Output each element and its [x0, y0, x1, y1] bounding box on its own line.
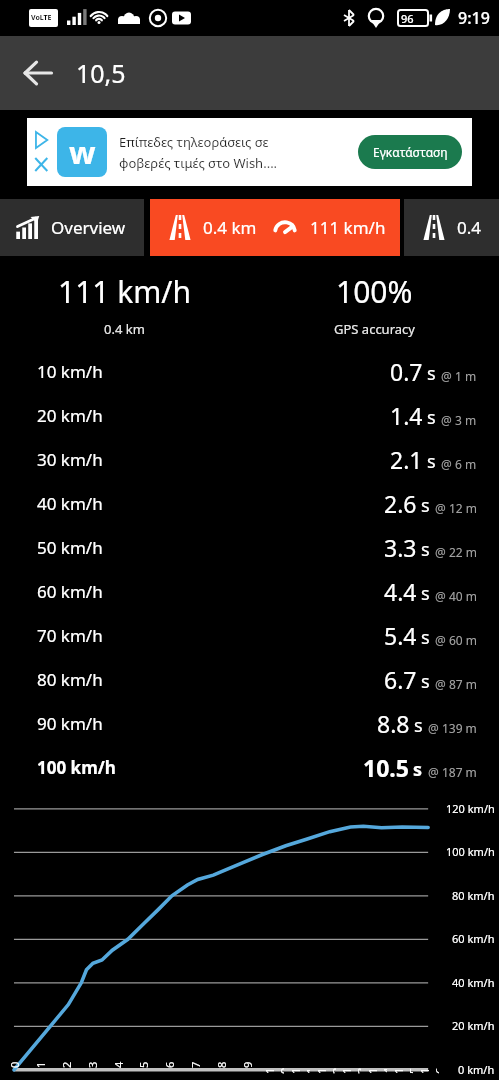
staticText: 10 km/h — [37, 360, 103, 383]
staticText: 100 km/h — [446, 844, 495, 859]
button[interactable]: 40 km/h — [37, 481, 477, 525]
staticText: s — [421, 537, 430, 562]
staticText: s — [427, 361, 436, 386]
staticText: 96 — [401, 11, 414, 26]
staticText: 10 — [262, 1062, 284, 1074]
button[interactable]: 0.4 km — [404, 199, 499, 256]
staticText: 0.7 — [390, 356, 423, 387]
staticText: 100 km/h — [37, 756, 116, 779]
staticText: s — [421, 581, 430, 606]
staticText: 14 — [365, 1062, 387, 1074]
button[interactable]: 30 km/h — [37, 437, 477, 481]
button[interactable]: 80 km/h — [37, 657, 477, 701]
button[interactable]: 20 km/h — [37, 393, 477, 437]
staticText: Επίπεδες τηλεοράσεις σε — [119, 133, 269, 151]
staticText: 50 km/h — [37, 536, 103, 559]
staticText: 90 km/h — [37, 712, 103, 735]
staticText: 6.7 — [384, 664, 417, 695]
staticText: @ 3 m — [441, 412, 477, 428]
staticText: 2.6 — [384, 488, 417, 519]
staticText: s — [413, 757, 423, 782]
staticText: 40 km/h — [452, 975, 495, 990]
staticText: @ 1 m — [441, 368, 477, 384]
staticText: 0.4 km — [203, 216, 257, 239]
button[interactable]: Back — [0, 36, 76, 110]
staticText: 10,5 — [76, 56, 126, 90]
staticText: 12 — [314, 1062, 336, 1074]
staticText: 3.3 — [384, 532, 417, 563]
staticText: 1 — [33, 1061, 48, 1068]
staticText: 80 km/h — [37, 668, 103, 691]
staticText: 20 km/h — [452, 1018, 495, 1033]
staticText: 60 km/h — [452, 931, 495, 946]
button[interactable]: 50 km/h — [37, 525, 477, 569]
staticText: 0.4 km — [457, 216, 499, 239]
staticText: s — [421, 669, 430, 694]
staticText: 70 km/h — [37, 624, 103, 647]
button[interactable]: w — [27, 118, 472, 186]
staticText: 6 — [162, 1061, 177, 1068]
staticText: @ 60 m — [435, 632, 477, 648]
staticText: Εγκατάσταση — [373, 144, 448, 160]
staticText: VoLTE — [31, 13, 52, 23]
staticText: w — [69, 131, 96, 173]
staticText: @ 22 m — [435, 544, 477, 560]
staticText: Overview — [51, 216, 126, 239]
staticText: 120 km/h — [446, 801, 495, 816]
staticText: 3 — [85, 1061, 100, 1068]
staticText: 111 km/h — [58, 271, 192, 312]
staticText: s — [427, 449, 436, 474]
staticText: 20 km/h — [37, 404, 103, 427]
staticText: 1.4 — [390, 400, 423, 431]
staticText: s — [421, 493, 430, 518]
staticText: 30 km/h — [37, 448, 103, 471]
staticText: 0.4 km — [104, 320, 145, 338]
staticText: 5 — [136, 1061, 151, 1068]
staticText: 8 — [214, 1061, 229, 1068]
staticText: @ 6 m — [441, 456, 477, 472]
staticText: 8.8 — [377, 708, 410, 739]
staticText: s — [414, 713, 423, 738]
staticText: 13 — [339, 1062, 361, 1074]
staticText: @ 87 m — [435, 676, 477, 692]
button[interactable]: 0.4 km — [150, 199, 400, 256]
staticText: 15 — [391, 1062, 413, 1074]
staticText: 111 km/h — [310, 216, 386, 239]
button[interactable]: 10 km/h — [37, 349, 477, 393]
staticText: 4 — [111, 1061, 126, 1068]
button[interactable]: 60 km/h — [37, 569, 477, 613]
staticText: 7 — [188, 1061, 203, 1068]
staticText: φοβερές τιμές στο Wish.... — [119, 154, 278, 172]
staticText: @ 187 m — [428, 764, 477, 780]
staticText: GPS accuracy — [334, 320, 415, 338]
button[interactable]: 90 km/h — [37, 701, 477, 745]
button[interactable]: 70 km/h — [37, 613, 477, 657]
staticText: 100% — [336, 271, 413, 312]
button[interactable]: Εγκατάσταση — [358, 135, 462, 169]
staticText: @ 40 m — [435, 588, 477, 604]
staticText: 80 km/h — [452, 888, 495, 903]
staticText: @ 12 m — [435, 500, 477, 516]
staticText: s — [427, 405, 436, 430]
staticText: 2.1 — [390, 444, 423, 475]
staticText: 4.4 — [384, 576, 417, 607]
staticText: 9 — [240, 1061, 255, 1068]
staticText: 2 — [59, 1061, 74, 1068]
staticText: 0 km/h — [458, 1062, 495, 1077]
staticText: @ 139 m — [428, 720, 477, 736]
staticText: 10.5 — [363, 752, 409, 783]
staticText: 40 km/h — [37, 492, 103, 515]
staticText: 9:19 — [458, 7, 490, 29]
button[interactable]: 100 km/h — [37, 745, 477, 789]
staticText: 5.4 — [384, 620, 417, 651]
button[interactable]: Overview — [0, 199, 144, 256]
button[interactable]: Ad options — [32, 129, 50, 175]
staticText: 16 — [417, 1062, 439, 1074]
staticText: 60 km/h — [37, 580, 103, 603]
staticText: 0 — [7, 1061, 22, 1068]
staticText: 11 — [288, 1062, 310, 1074]
staticText: s — [421, 625, 430, 650]
